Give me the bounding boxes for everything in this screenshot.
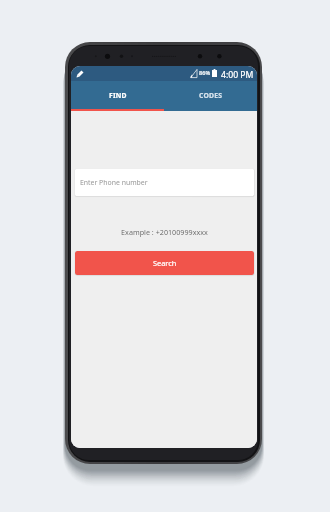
- button[interactable]: Enter Phone number: [75, 169, 254, 196]
- other: Signal strength: [190, 69, 197, 78]
- staticText: FIND: [109, 91, 127, 100]
- staticText: Example : +20100999xxxx: [121, 227, 208, 237]
- staticText: 86%: [199, 69, 211, 77]
- button[interactable]: Search: [75, 251, 254, 275]
- button[interactable]: FIND: [71, 81, 164, 109]
- staticText: Enter Phone number: [80, 178, 148, 187]
- button[interactable]: CODES: [164, 81, 257, 109]
- other: Edit: [74, 69, 85, 80]
- staticText: 4:00 PM: [221, 69, 254, 81]
- staticText: CODES: [199, 91, 223, 100]
- other: Battery: [212, 69, 217, 77]
- staticText: Search: [153, 258, 177, 268]
